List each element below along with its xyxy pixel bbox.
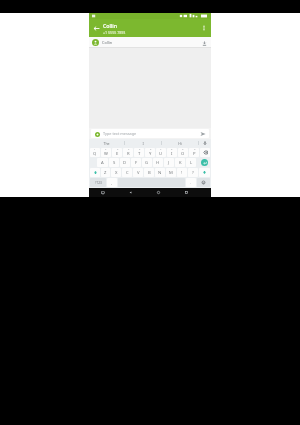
staticText: F xyxy=(135,160,138,166)
button[interactable]: 6 xyxy=(145,148,155,157)
staticText: 3 xyxy=(117,148,119,151)
staticText: ?123 xyxy=(95,181,102,185)
staticText: +1 5555 7893 xyxy=(103,30,126,35)
button[interactable]: L xyxy=(186,158,196,167)
staticText: X xyxy=(115,170,118,176)
button[interactable]: Enter xyxy=(199,158,210,167)
staticText: I xyxy=(142,141,144,146)
button[interactable]: G xyxy=(142,158,152,167)
staticText: Collin xyxy=(102,40,112,45)
staticText: ! xyxy=(181,170,183,176)
button[interactable]: Z xyxy=(101,168,110,177)
staticText: ? xyxy=(192,170,194,176)
staticText: K xyxy=(179,160,182,166)
button[interactable]: 9 xyxy=(178,148,188,157)
button[interactable]: 4 xyxy=(123,148,133,157)
button[interactable]: ?123 xyxy=(90,178,106,187)
button[interactable]: B xyxy=(144,168,154,177)
button[interactable]: A xyxy=(97,158,108,167)
staticText: Z xyxy=(104,170,107,176)
button[interactable]: 7 xyxy=(156,148,166,157)
staticText: The xyxy=(103,141,110,146)
staticText: Q xyxy=(93,151,97,157)
button[interactable]: I xyxy=(125,139,161,147)
staticText: 0 xyxy=(194,148,196,151)
staticText: I xyxy=(171,151,173,157)
button[interactable]: 0 xyxy=(189,148,199,157)
button[interactable]: X xyxy=(111,168,121,177)
staticText: D xyxy=(123,160,127,166)
staticText: 8 xyxy=(171,148,173,151)
staticText: L xyxy=(190,160,193,166)
button[interactable]: J xyxy=(164,158,174,167)
button[interactable]: H xyxy=(153,158,163,167)
button[interactable]: S xyxy=(109,158,119,167)
button[interactable]: Add attachment xyxy=(91,129,209,138)
button[interactable]: Collin xyxy=(103,22,197,35)
button[interactable]: More options xyxy=(197,21,211,35)
staticText: N xyxy=(158,170,162,176)
button[interactable]: Collin xyxy=(89,37,211,48)
staticText: Hi xyxy=(178,141,182,146)
button[interactable]: The xyxy=(89,139,124,147)
staticText: T xyxy=(138,151,141,157)
button[interactable]: F xyxy=(131,158,141,167)
staticText: E xyxy=(116,151,119,157)
button[interactable]: Backspace xyxy=(200,148,210,157)
button[interactable]: 2 xyxy=(101,148,111,157)
staticText: 4 xyxy=(128,148,130,151)
button[interactable]: K xyxy=(175,158,185,167)
button[interactable]: , xyxy=(107,178,117,187)
button[interactable]: Shift xyxy=(90,168,100,177)
button[interactable]: Hide keyboard xyxy=(89,188,116,197)
staticText: R xyxy=(127,151,130,157)
button[interactable]: Hi xyxy=(162,139,198,147)
button[interactable]: 5 xyxy=(134,148,144,157)
button[interactable]: 1 xyxy=(90,148,100,157)
button[interactable]: Delete xyxy=(199,168,210,177)
button[interactable]: Emoji xyxy=(197,178,210,187)
staticText: , xyxy=(111,180,113,185)
staticText: W xyxy=(104,151,108,157)
staticText: 1 xyxy=(94,148,96,151)
button[interactable]: Add attachment xyxy=(93,130,101,138)
staticText: C xyxy=(126,170,129,176)
staticText: Collin xyxy=(103,22,117,29)
button[interactable]: Home xyxy=(144,188,172,197)
staticText: U xyxy=(159,151,163,157)
button[interactable]: 8 xyxy=(167,148,177,157)
button[interactable]: Navigate up xyxy=(89,21,103,35)
staticText: O xyxy=(181,151,185,157)
button[interactable]: Send message xyxy=(198,129,207,138)
button[interactable]: N xyxy=(155,168,165,177)
staticText: 6 xyxy=(150,148,152,151)
staticText: Y xyxy=(149,151,152,157)
staticText: . xyxy=(190,180,192,185)
staticText: 9 xyxy=(182,148,184,151)
button[interactable]: ! xyxy=(177,168,187,177)
button[interactable]: ? xyxy=(188,168,198,177)
button[interactable]: Back xyxy=(116,188,144,197)
staticText: A xyxy=(101,160,104,166)
button[interactable]: Voice input xyxy=(199,139,211,147)
staticText: V xyxy=(137,170,140,176)
button[interactable]: D xyxy=(120,158,130,167)
button[interactable]: Attach xyxy=(199,38,209,48)
button[interactable]: M xyxy=(166,168,176,177)
staticText: 7 xyxy=(160,148,162,151)
button[interactable]: V xyxy=(133,168,143,177)
staticText: M xyxy=(169,170,173,176)
staticText: 5 xyxy=(139,148,141,151)
staticText: 2 xyxy=(105,148,107,151)
staticText: B xyxy=(148,170,151,176)
staticText: P xyxy=(193,151,196,157)
staticText: J xyxy=(168,160,170,166)
staticText: G xyxy=(145,160,149,166)
staticText: Type text message xyxy=(103,131,137,136)
button[interactable]: C xyxy=(122,168,132,177)
button[interactable]: Recent apps xyxy=(172,188,200,197)
button[interactable]: 3 xyxy=(112,148,122,157)
staticText: H xyxy=(156,160,160,166)
